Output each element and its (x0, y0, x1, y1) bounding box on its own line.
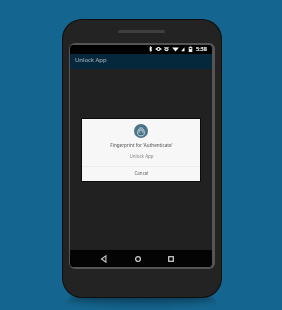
button[interactable]: Unlock App (70, 54, 212, 70)
staticText: 5:38 (196, 45, 207, 52)
button[interactable]: Cancel (82, 165, 200, 180)
staticText: Unlock App (129, 153, 154, 159)
button[interactable]: Recent apps (164, 252, 178, 266)
staticText: Cancel (134, 170, 149, 176)
staticText: Fingerprint for 'Authenticate' (110, 142, 173, 148)
button[interactable]: Home (131, 252, 145, 266)
button[interactable]: Back (97, 252, 111, 266)
staticText: Unlock App (75, 56, 107, 64)
